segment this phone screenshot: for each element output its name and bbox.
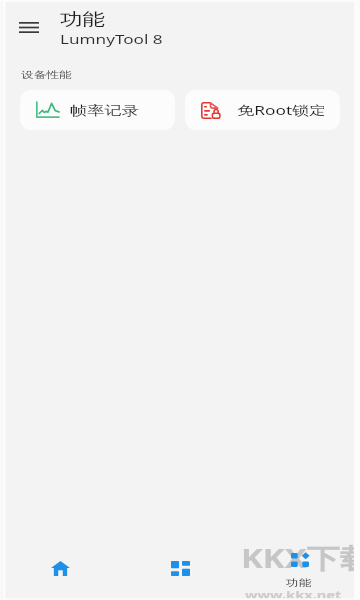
button[interactable]: Menu (10, 12, 47, 42)
staticText: LumnyTool 8 (60, 31, 163, 48)
staticText: www.kkx.net (245, 587, 342, 600)
staticText: KKX下载 (241, 539, 360, 576)
staticText: 设备性能 (21, 69, 71, 81)
button[interactable]: 帧率记录 (20, 90, 175, 130)
button[interactable]: Home (0, 538, 120, 600)
button[interactable]: 功能 (240, 538, 360, 600)
staticText: 免Root锁定帧 (237, 101, 324, 119)
button[interactable]: Dashboard (120, 538, 240, 600)
staticText: 帧率记录 (70, 102, 139, 118)
staticText: 功能 (286, 577, 311, 589)
button[interactable]: 免Root锁定帧 (185, 90, 340, 130)
staticText: 功能 (60, 9, 105, 30)
